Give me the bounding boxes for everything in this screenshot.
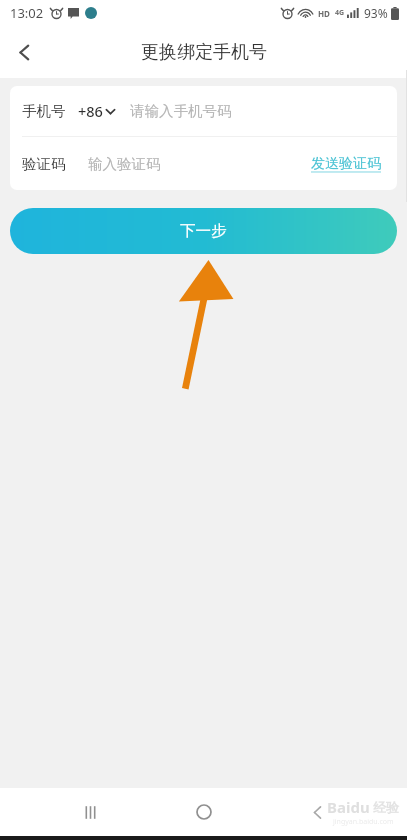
button[interactable]: 下一步 bbox=[10, 208, 397, 254]
button[interactable]: 发送验证码 bbox=[309, 149, 383, 179]
staticText: 更换绑定手机号 bbox=[141, 41, 267, 64]
staticText: 发送验证码 bbox=[311, 155, 381, 173]
staticText: 输入验证码 bbox=[88, 155, 161, 173]
staticText: 请输入手机号码 bbox=[130, 102, 232, 120]
staticText: 下一步 bbox=[180, 221, 227, 241]
staticText: 93% bbox=[364, 5, 388, 21]
staticText: 经验 bbox=[373, 799, 399, 815]
staticText: 手机号 bbox=[22, 102, 66, 120]
button[interactable]: Home bbox=[180, 788, 228, 836]
staticText: HD bbox=[318, 8, 330, 19]
button[interactable]: Recent apps bbox=[66, 788, 114, 836]
button[interactable]: Back bbox=[293, 788, 341, 836]
button[interactable]: Back bbox=[0, 28, 48, 76]
staticText: 13:02 bbox=[10, 4, 44, 22]
button[interactable]: 手机号 bbox=[10, 86, 397, 136]
staticText: 4G bbox=[335, 8, 345, 18]
staticText: 验证码 bbox=[22, 155, 66, 173]
staticText: +86 bbox=[78, 101, 103, 121]
staticText: jingyan.baidu.com bbox=[333, 817, 394, 827]
staticText: Baidu bbox=[327, 797, 370, 817]
